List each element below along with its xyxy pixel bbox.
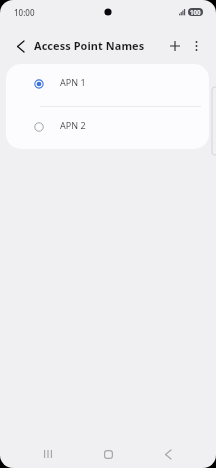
button[interactable]: APN 1 [6,64,209,106]
button[interactable]: Home [93,439,123,468]
button[interactable]: More options [182,32,210,60]
button[interactable]: Navigate up [6,32,34,60]
staticText: APN 2 [60,119,86,131]
staticText: 10:00 [14,7,35,18]
staticText: APN 1 [60,76,86,88]
staticText: Access Point Names [34,38,145,53]
button[interactable]: Add APN [161,32,189,60]
button[interactable]: Recent apps [33,439,63,468]
button[interactable]: APN 2 [6,107,209,149]
button[interactable]: Back [153,439,183,468]
staticText: 100 [190,8,201,16]
